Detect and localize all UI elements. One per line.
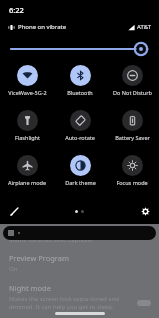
button[interactable]: Dark theme	[55, 151, 105, 196]
button[interactable]: Auto-rotate	[55, 106, 105, 151]
button[interactable]: Do Not Disturb	[107, 61, 157, 106]
staticText: On	[9, 265, 18, 273]
staticText: 6:22	[9, 5, 24, 15]
staticText: Dark theme	[65, 179, 96, 186]
button[interactable]: ViceWave-5G-2	[2, 61, 52, 106]
staticText: ViceWave-5G-2	[8, 89, 47, 96]
staticText: Bluetooth	[67, 89, 93, 96]
staticText: Flashlight	[15, 134, 40, 141]
staticText: Preview Program	[9, 253, 70, 263]
button[interactable]: Bluetooth	[55, 61, 105, 106]
button[interactable]: Edit tiles	[5, 202, 23, 220]
staticText: Do Not Disturb	[113, 89, 152, 96]
button[interactable]: Airplane mode	[2, 151, 52, 196]
staticText: AT&T	[137, 23, 151, 31]
staticText: Makes the screen look sepia-toned and	[9, 295, 120, 303]
staticText: Battery Saver	[115, 134, 150, 141]
staticText: Menu, controls, text, captions	[9, 236, 93, 244]
button[interactable]: Settings	[136, 202, 154, 220]
staticText: Airplane mode	[8, 179, 46, 186]
button[interactable]	[137, 300, 151, 306]
staticText: Night mode	[9, 283, 51, 293]
staticText: Phone on vibrate	[18, 23, 67, 31]
button[interactable]: Battery Saver	[107, 106, 157, 151]
staticText: Focus mode	[116, 179, 148, 186]
staticText: dimmed. It can help you get to sleep.	[9, 303, 114, 311]
staticText: Accessibility	[9, 224, 49, 234]
button[interactable]: Focus mode	[107, 151, 157, 196]
staticText: Auto-rotate	[65, 134, 95, 141]
button[interactable]: Brightness	[11, 41, 148, 57]
button[interactable]: Flashlight	[2, 106, 52, 151]
button[interactable]	[3, 226, 156, 240]
